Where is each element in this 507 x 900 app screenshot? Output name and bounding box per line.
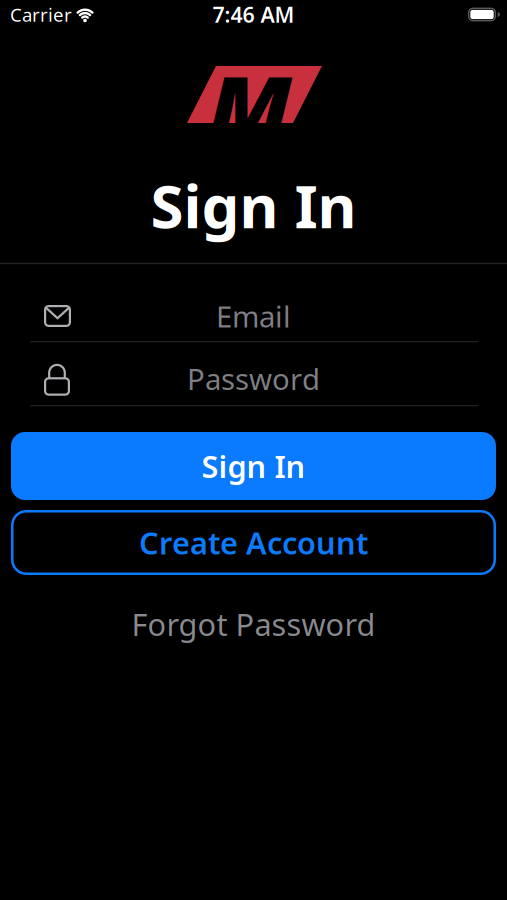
- staticText: Sign In: [150, 165, 356, 245]
- staticText: Carrier: [10, 2, 72, 27]
- staticText: Email: [216, 296, 291, 335]
- button[interactable]: Sign In: [11, 432, 496, 500]
- staticText: M: [214, 50, 287, 157]
- staticText: Password: [187, 359, 320, 398]
- staticText: Create Account: [139, 522, 368, 563]
- button[interactable]: Email: [0, 263, 507, 341]
- button[interactable]: Password: [0, 342, 507, 406]
- button[interactable]: Create Account: [11, 510, 496, 575]
- staticText: Forgot Password: [131, 604, 375, 644]
- staticText: Sign In: [201, 446, 305, 486]
- staticText: 7:46 AM: [212, 0, 294, 29]
- button[interactable]: Forgot Password: [131, 604, 375, 644]
